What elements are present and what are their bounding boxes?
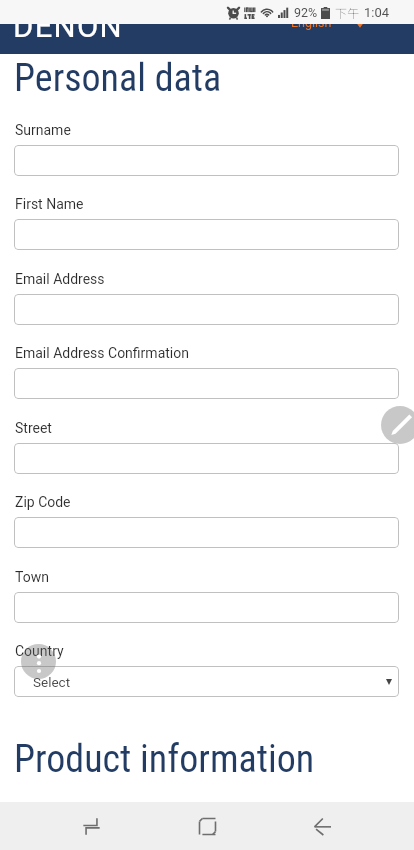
button[interactable]: More options [21,644,56,679]
staticText: Street [15,420,52,436]
staticText: 92% [294,5,318,20]
staticText: 下午 [335,4,360,21]
staticText: 1:04 [364,5,390,20]
staticText: Personal data [14,56,222,101]
button[interactable]: English [291,24,332,30]
button[interactable]: Select [14,666,399,697]
button[interactable]: Home [178,802,236,850]
button[interactable] [14,145,399,176]
staticText: English [291,24,332,30]
button[interactable] [14,219,399,250]
staticText: Email Address Confirmation [15,345,189,361]
staticText: DENON [13,24,124,38]
staticText: Zip Code [15,494,71,510]
staticText: Town [15,569,49,585]
staticText: Country [15,643,64,659]
button[interactable]: Back [293,802,351,850]
staticText: Select [33,674,71,690]
button[interactable]: Edit [381,406,414,444]
button[interactable] [14,294,399,325]
button[interactable] [14,368,399,399]
staticText: First Name [15,196,84,212]
button[interactable] [14,592,399,623]
button[interactable]: Change language [355,24,365,30]
button[interactable]: Recents [62,802,120,850]
button[interactable] [14,443,399,474]
staticText: Product information [14,737,315,782]
button[interactable] [14,517,399,548]
staticText: Surname [15,122,71,138]
staticText: Email Address [15,271,105,287]
